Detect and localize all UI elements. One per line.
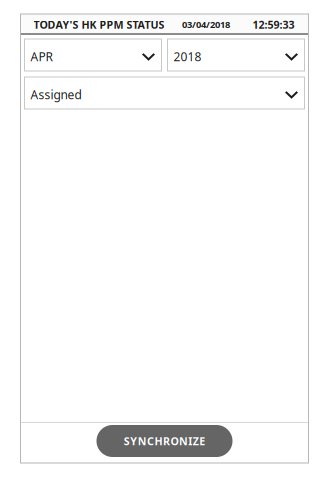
staticText: Assigned [30,86,81,102]
staticText: 03/04/2018 [182,18,230,31]
staticText: APR [30,48,52,64]
button[interactable]: APR [24,39,161,71]
button[interactable]: SYNCHRONIZE [96,425,232,457]
button[interactable]: Assigned [24,77,304,109]
staticText: 2018 [173,48,201,64]
button[interactable]: 2018 [167,39,304,71]
staticText: TODAY'S HK PPM STATUS [33,17,164,32]
staticText: SYNCHRONIZE [124,434,205,448]
staticText: 12:59:33 [252,17,294,32]
